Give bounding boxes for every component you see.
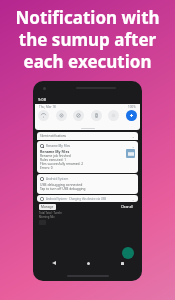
- staticText: 9:08: [38, 97, 46, 102]
- staticText: Silent notifications: [40, 134, 67, 138]
- staticText: Rules executed: 1: [40, 158, 66, 162]
- staticText: Morning Mix: [39, 215, 55, 219]
- staticText: Thu, Mar 18: [39, 105, 56, 109]
- staticText: Errors: 0: [40, 166, 53, 170]
- staticText: USB debugging connected: [40, 182, 83, 187]
- button[interactable]: Silent notifications: [37, 132, 138, 140]
- staticText: Rename My Files: [40, 149, 70, 154]
- button[interactable]: Quick setting 0: [38, 110, 49, 121]
- staticText: 100%: [128, 105, 136, 109]
- staticText: Total Total · Tuneln: [39, 211, 62, 215]
- staticText: Rename job finished: [40, 154, 71, 158]
- button[interactable]: Manage: [39, 204, 56, 210]
- button[interactable]: Clear all: [119, 204, 136, 210]
- staticText: ⌄: [132, 145, 135, 148]
- staticText: Notification with the sumup after each e…: [0, 6, 175, 73]
- staticText: ⌄: [132, 198, 135, 201]
- button[interactable]: Rename My Files: [37, 141, 138, 173]
- button[interactable]: Quick setting 1: [56, 110, 67, 121]
- button[interactable]: Add tile: [126, 110, 137, 121]
- staticText: Android System · Charging this device vi…: [46, 197, 107, 201]
- button[interactable]: Recents: [117, 258, 127, 268]
- button[interactable]: Android System: [37, 174, 138, 194]
- button[interactable]: Android System · Charging this device vi…: [37, 195, 138, 202]
- staticText: Tap to turn off USB debugging: [40, 187, 86, 191]
- staticText: Clear all: [121, 205, 134, 209]
- staticText: ⌄: [132, 135, 135, 138]
- staticText: Manage: [41, 205, 54, 209]
- button[interactable]: Home: [83, 258, 93, 268]
- button[interactable]: Quick setting 3: [91, 110, 102, 121]
- button[interactable]: Quick setting 4: [108, 110, 119, 121]
- staticText: Android System: [46, 177, 69, 181]
- button[interactable]: Add: [122, 247, 134, 259]
- button[interactable]: Quick setting 2: [73, 110, 84, 121]
- button[interactable]: Back: [49, 258, 59, 268]
- staticText: Files successfully renamed: 2: [40, 162, 84, 166]
- staticText: Rename My Files: [46, 144, 71, 148]
